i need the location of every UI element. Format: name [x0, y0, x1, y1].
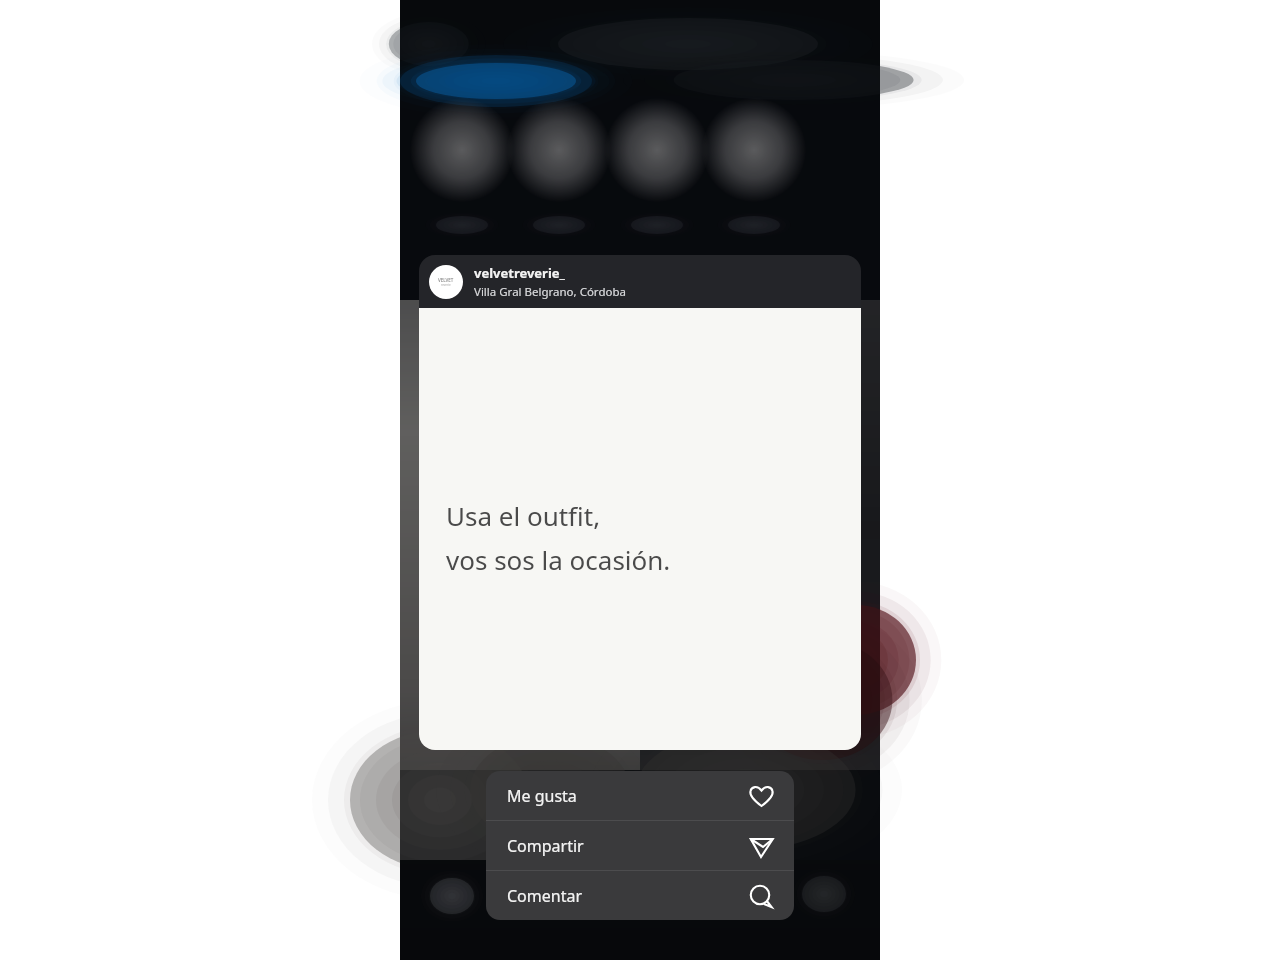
button[interactable]: Comment [486, 871, 794, 920]
staticText: VELVET [438, 277, 454, 283]
staticText: Villa Gral Belgrano, Córdoba [474, 284, 626, 300]
button[interactable]: VELVET [419, 255, 861, 750]
staticText: Usa el outfit, [446, 498, 601, 533]
staticText: vos sos la ocasión. [446, 542, 671, 577]
staticText: Compartir [507, 835, 584, 857]
button[interactable]: Like [486, 771, 794, 820]
staticText: Me gusta [507, 785, 577, 807]
button[interactable]: Share [486, 821, 794, 870]
staticText: velvetreverie_ [474, 264, 565, 282]
staticText: reverie [441, 283, 451, 287]
staticText: Comentar [507, 885, 583, 907]
